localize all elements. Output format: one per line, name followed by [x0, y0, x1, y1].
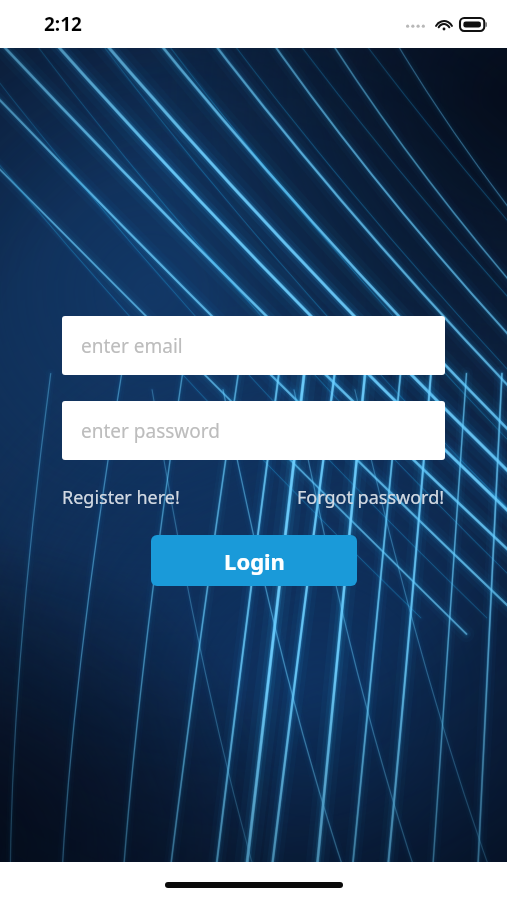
staticText: Forgot password!: [297, 485, 445, 510]
staticText: 2:12: [44, 11, 82, 37]
button[interactable]: enter password: [62, 401, 445, 460]
button[interactable]: Login: [151, 535, 357, 586]
staticText: Register here!: [62, 485, 180, 510]
staticText: enter email: [81, 333, 183, 359]
staticText: enter password: [81, 418, 220, 444]
button[interactable]: enter email: [62, 316, 445, 375]
button[interactable]: Register here!: [62, 482, 180, 513]
button[interactable]: Forgot password!: [297, 482, 445, 513]
staticText: Login: [224, 546, 285, 576]
